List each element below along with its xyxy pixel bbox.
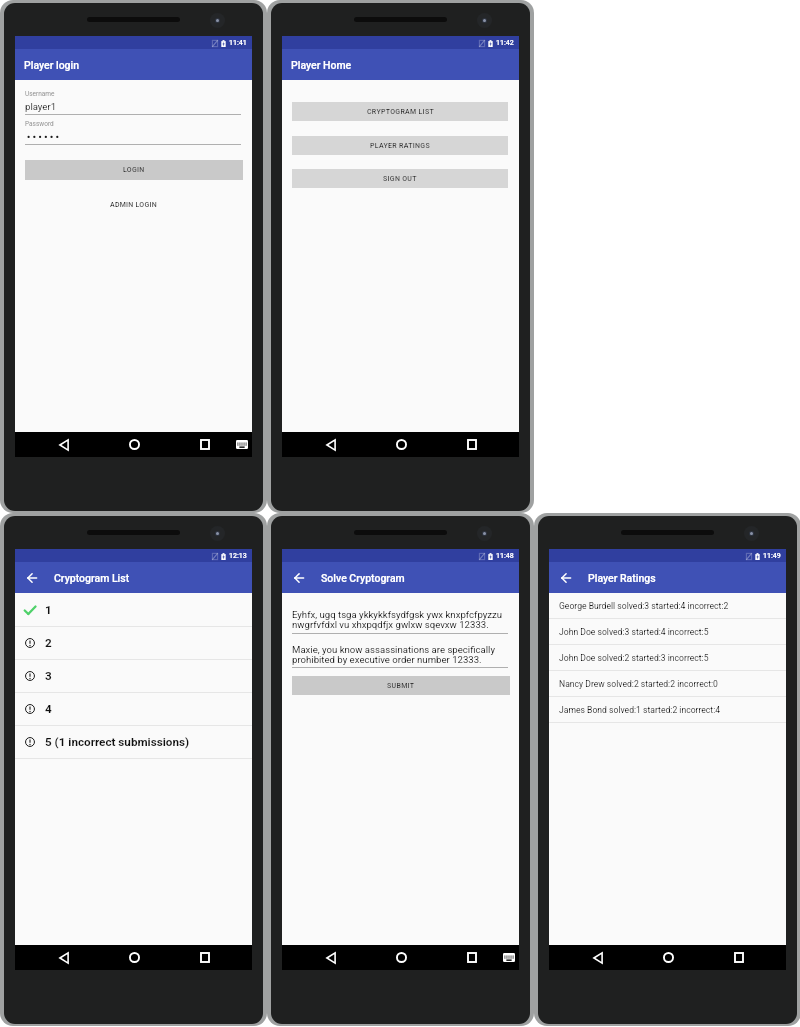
- button[interactable]: CRYPTOGRAM LIST: [292, 102, 508, 121]
- staticText: CRYPTOGRAM LIST: [367, 108, 434, 116]
- button[interactable]: 4: [15, 693, 252, 725]
- button[interactable]: 5 (1 incorrect submissions): [15, 726, 252, 758]
- staticText: SUBMIT: [387, 682, 415, 690]
- button[interactable]: George Burdell solved:3 started:4 incorr…: [549, 593, 786, 618]
- button[interactable]: James Bond solved:1 started:2 incorrect:…: [549, 697, 786, 722]
- staticText: Cryptogram List: [54, 572, 130, 584]
- button[interactable]: 2: [15, 627, 252, 659]
- staticText: 3: [45, 669, 52, 683]
- button[interactable]: Home: [656, 945, 681, 970]
- staticText: SIGN OUT: [383, 175, 417, 183]
- button[interactable]: SIGN OUT: [292, 169, 508, 188]
- staticText: Nancy Drew solved:2 started:2 incorrect:…: [559, 679, 718, 689]
- staticText: 11:42: [496, 39, 514, 47]
- button[interactable]: Navigate up: [288, 562, 309, 593]
- staticText: James Bond solved:1 started:2 incorrect:…: [559, 705, 721, 715]
- button[interactable]: Home: [122, 945, 147, 970]
- staticText: John Doe solved:2 started:3 incorrect:5: [559, 653, 709, 663]
- staticText: Solve Cryptogram: [321, 572, 405, 584]
- button[interactable]: John Doe solved:3 started:4 incorrect:5: [549, 619, 786, 644]
- button[interactable]: 1: [15, 593, 252, 626]
- button[interactable]: Recent apps: [192, 945, 217, 970]
- staticText: PLAYER RATINGS: [370, 142, 430, 150]
- button[interactable]: Nancy Drew solved:2 started:2 incorrect:…: [549, 671, 786, 696]
- button[interactable]: Recent apps: [726, 945, 751, 970]
- button[interactable]: Navigate up: [555, 562, 576, 593]
- staticText: George Burdell solved:3 started:4 incorr…: [559, 601, 729, 611]
- staticText: Player Home: [291, 59, 352, 71]
- staticText: 5 (1 incorrect submissions): [45, 735, 190, 749]
- button[interactable]: Navigate up: [21, 562, 42, 593]
- button[interactable]: Home: [389, 945, 414, 970]
- staticText: 11:49: [763, 552, 781, 560]
- staticText: player1: [25, 101, 57, 112]
- button[interactable]: Back: [51, 432, 76, 457]
- staticText: John Doe solved:3 started:4 incorrect:5: [559, 627, 709, 637]
- staticText: Username: [25, 90, 55, 98]
- staticText: LOGIN: [123, 166, 145, 174]
- button[interactable]: Recent apps: [459, 945, 484, 970]
- staticText: 1: [45, 603, 52, 617]
- button[interactable]: Recent apps: [459, 432, 484, 457]
- button[interactable]: Back: [585, 945, 610, 970]
- button[interactable]: Back: [318, 432, 343, 457]
- staticText: 2: [45, 636, 52, 650]
- button[interactable]: John Doe solved:2 started:3 incorrect:5: [549, 645, 786, 670]
- staticText: 12:13: [229, 552, 247, 560]
- button[interactable]: LOGIN: [25, 160, 243, 180]
- staticText: Player Ratings: [588, 572, 656, 584]
- button[interactable]: Show keyboard: [229, 432, 254, 457]
- button[interactable]: Back: [318, 945, 343, 970]
- button[interactable]: Back: [51, 945, 76, 970]
- button[interactable]: Show keyboard: [496, 945, 521, 970]
- staticText: 11:41: [229, 39, 247, 47]
- staticText: ADMIN LOGIN: [110, 201, 157, 209]
- button[interactable]: SUBMIT: [292, 676, 510, 695]
- button[interactable]: ADMIN LOGIN: [15, 198, 252, 212]
- staticText: Maxie, you know assassinations are speci…: [292, 644, 495, 666]
- staticText: Player login: [24, 59, 80, 71]
- staticText: Password: [25, 120, 54, 128]
- staticText: 4: [45, 702, 52, 716]
- button[interactable]: Recent apps: [192, 432, 217, 457]
- button[interactable]: PLAYER RATINGS: [292, 136, 508, 155]
- button[interactable]: Home: [122, 432, 147, 457]
- staticText: Eyhfx, ugq tsga ykkykkfsydfgsk ywx knxpf…: [292, 609, 503, 631]
- staticText: 11:48: [496, 552, 514, 560]
- button[interactable]: Home: [389, 432, 414, 457]
- button[interactable]: 3: [15, 660, 252, 692]
